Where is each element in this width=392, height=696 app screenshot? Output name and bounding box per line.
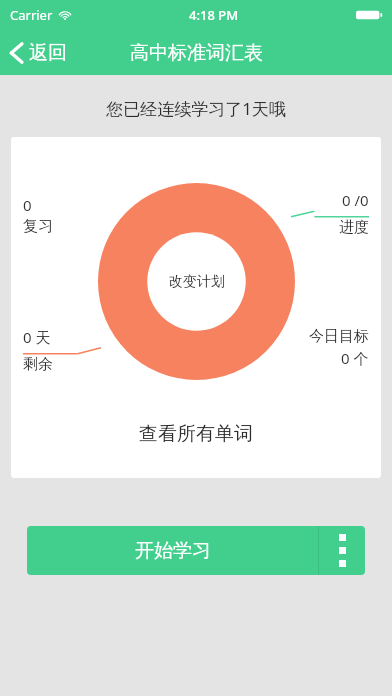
staticText: 开始学习 xyxy=(135,539,211,563)
staticText: 查看所有单词 xyxy=(139,422,253,446)
staticText: 0 /0 xyxy=(342,190,369,210)
staticText: 0 xyxy=(23,195,32,215)
staticText: 4:18 PM xyxy=(189,6,239,24)
button[interactable]: 开始学习 xyxy=(27,526,318,575)
staticText: 今日目标 xyxy=(309,327,369,346)
button[interactable]: 返回 xyxy=(0,35,77,71)
staticText: 返回 xyxy=(29,41,67,65)
staticText: 0 天 xyxy=(23,327,51,347)
staticText: 高中标准词汇表 xyxy=(130,41,263,65)
staticText: 剩余 xyxy=(23,355,53,374)
staticText: 复习 xyxy=(23,217,53,236)
button[interactable]: 查看所有单词 xyxy=(11,422,381,478)
staticText: 改变计划 xyxy=(169,273,225,291)
button[interactable]: 改变计划 xyxy=(98,183,295,380)
button[interactable]: More options xyxy=(319,526,365,575)
staticText: Carrier xyxy=(10,6,53,24)
staticText: 进度 xyxy=(339,218,369,237)
staticText: 0 个 xyxy=(341,348,369,368)
staticText: 您已经连续学习了1天哦 xyxy=(0,97,392,120)
